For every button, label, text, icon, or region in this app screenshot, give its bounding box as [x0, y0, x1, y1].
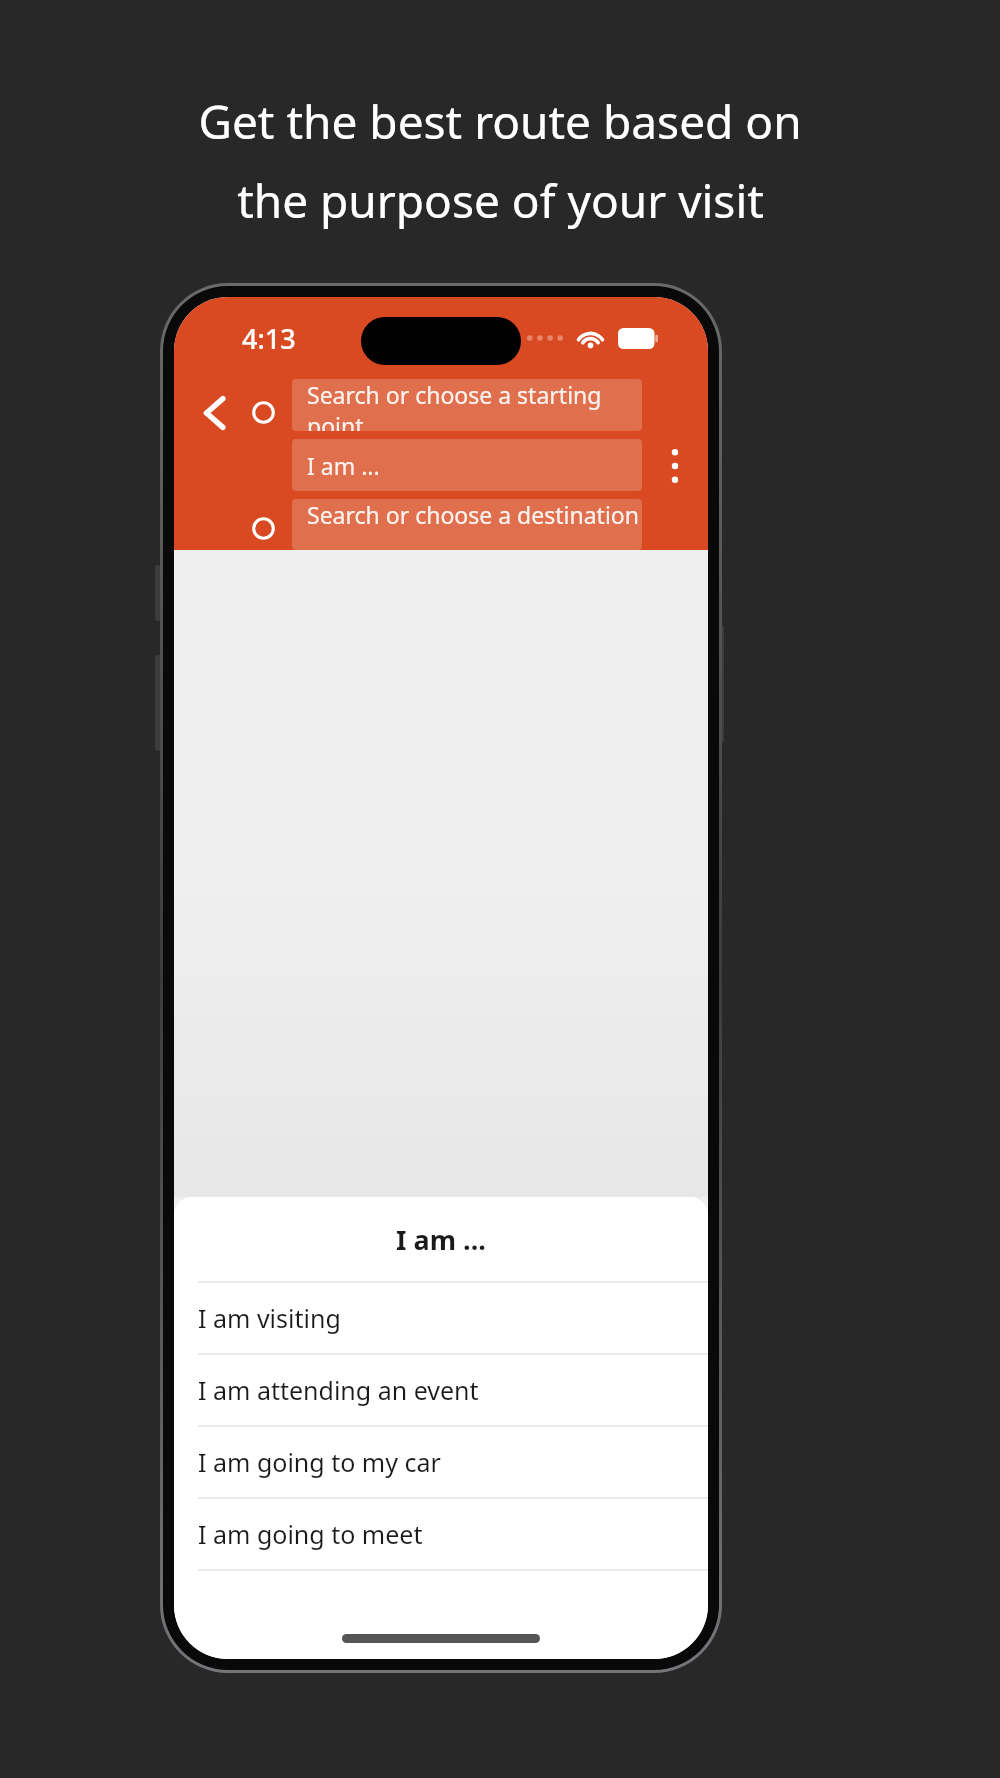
button[interactable]: Search or choose a destination ...	[292, 499, 642, 550]
button[interactable]: Destination	[234, 499, 292, 557]
staticText: I am ...	[396, 1221, 486, 1258]
button[interactable]: I am visiting	[174, 1283, 708, 1353]
button[interactable]: I am ...	[292, 439, 642, 491]
button[interactable]: Starting point	[234, 383, 292, 441]
staticText: Search or choose a destination ...	[307, 499, 642, 550]
button[interactable]: Back	[186, 385, 242, 441]
button[interactable]: I am attending an event	[174, 1355, 708, 1425]
staticText: I am visiting	[198, 1301, 341, 1335]
staticText: Get the best route based on	[198, 90, 802, 153]
button[interactable]: I am going to meet	[174, 1499, 708, 1569]
staticText: I am attending an event	[198, 1373, 479, 1407]
staticText: I am ...	[307, 450, 380, 481]
button[interactable]: I am going to my car	[174, 1427, 708, 1497]
staticText: 4:13	[242, 320, 296, 357]
staticText: I am going to my car	[198, 1445, 441, 1479]
staticText: Search or choose a starting point ...	[307, 379, 642, 431]
button[interactable]: More options	[646, 437, 704, 495]
staticText: I am going to meet	[198, 1517, 423, 1551]
button[interactable]: Search or choose a starting point ...	[292, 379, 642, 431]
staticText: the purpose of your visit	[237, 169, 764, 232]
